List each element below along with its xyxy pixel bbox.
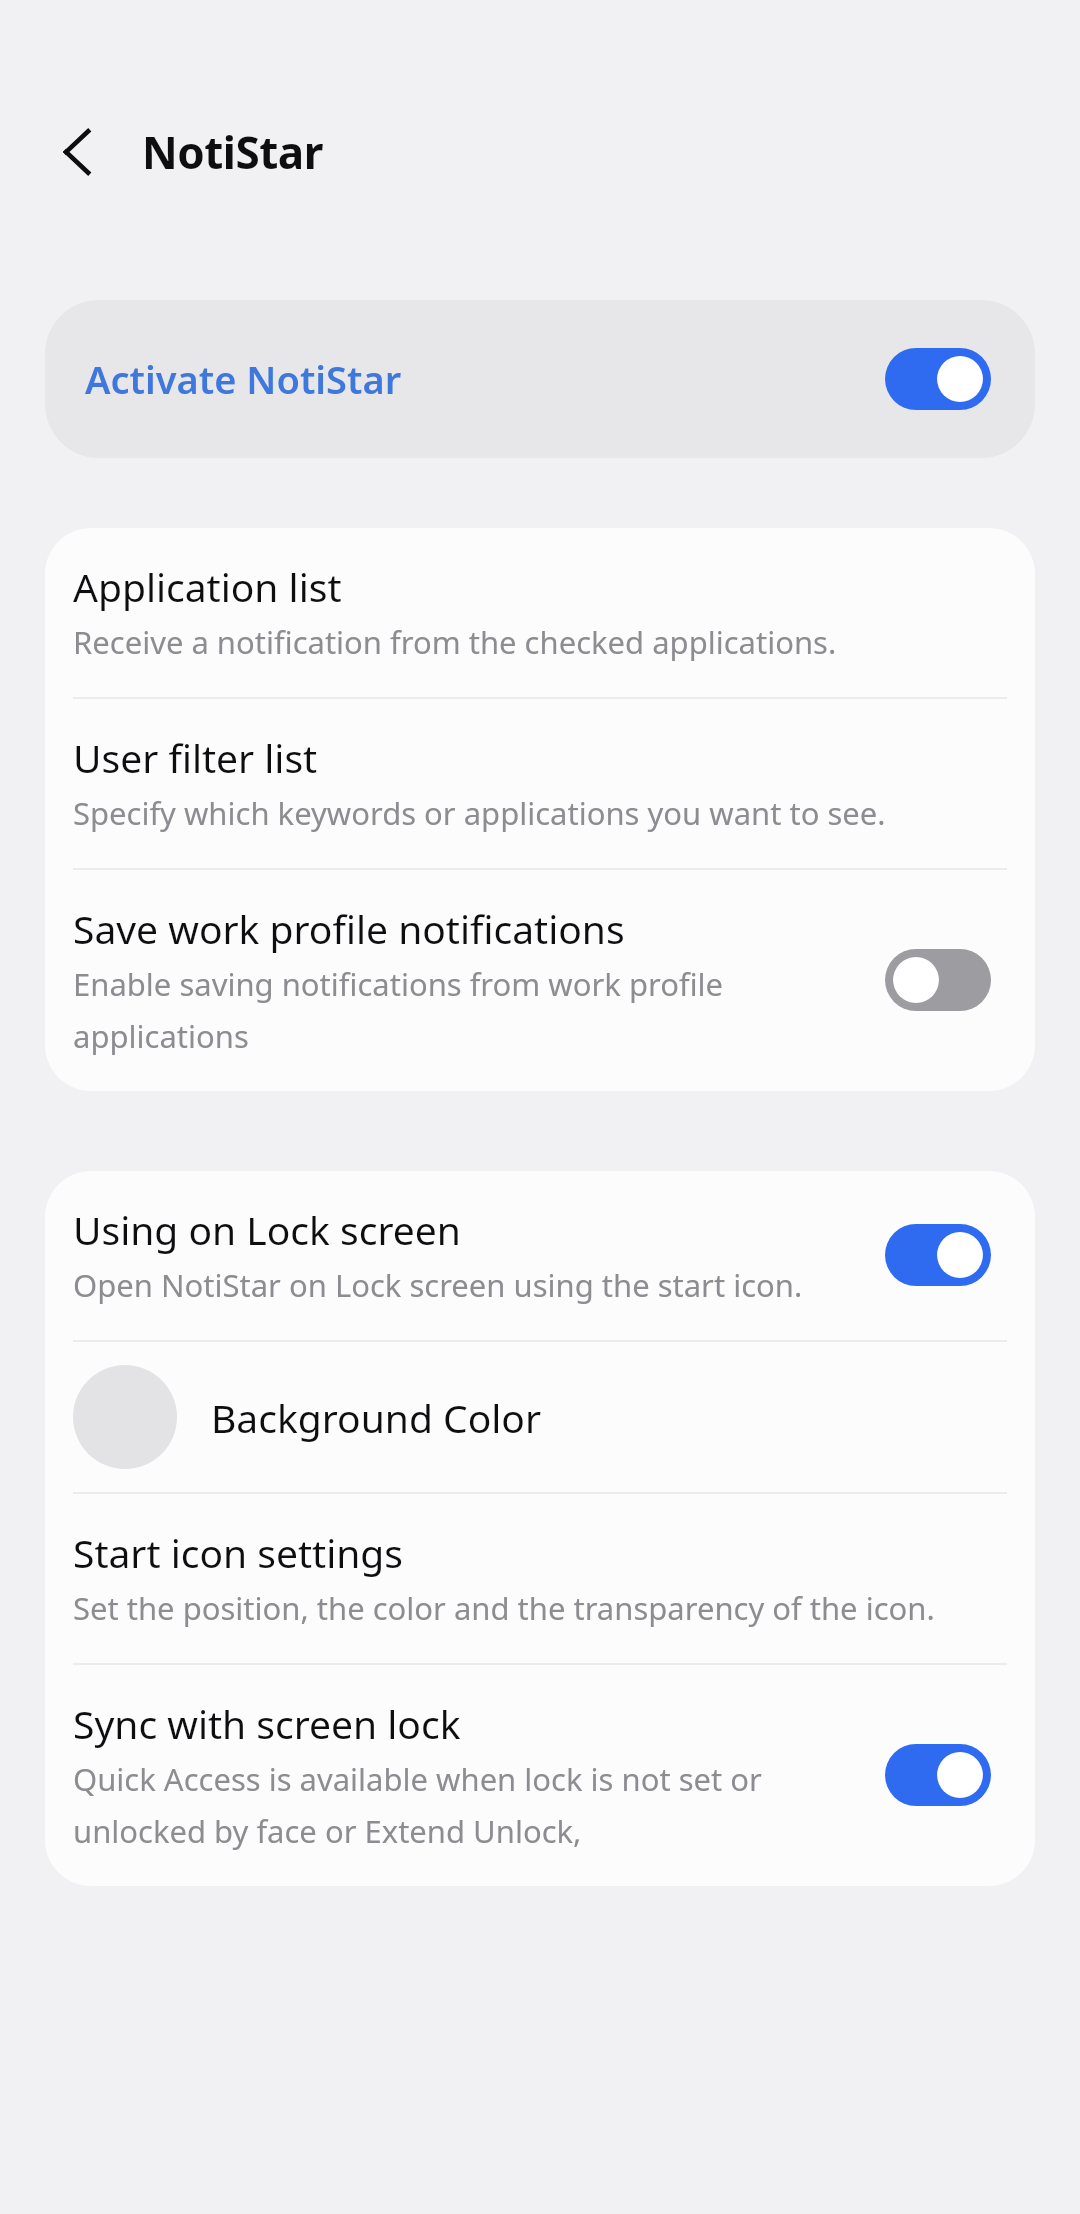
staticText: User filter list (73, 731, 318, 784)
staticText: NotiStar (142, 122, 323, 182)
button[interactable]: Switch on (885, 348, 991, 410)
staticText: Specify which keywords or applications y… (73, 792, 886, 834)
button[interactable]: Switch off (885, 949, 991, 1011)
button[interactable]: Activate NotiStar (45, 300, 1035, 458)
button[interactable]: User filter list (45, 699, 1035, 868)
staticText: Using on Lock screen (73, 1203, 461, 1256)
button[interactable]: Start icon settings (45, 1494, 1035, 1663)
button[interactable]: Using on Lock screen (45, 1171, 1035, 1340)
staticText: Activate NotiStar (85, 353, 885, 405)
staticText: Enable saving notifications from work pr… (73, 963, 869, 1057)
button[interactable]: Back (40, 114, 116, 190)
staticText: Start icon settings (73, 1526, 403, 1579)
button[interactable]: Save work profile notifications (45, 870, 1035, 1091)
button[interactable]: Background Color (45, 1342, 1035, 1492)
staticText: Open NotiStar on Lock screen using the s… (73, 1264, 803, 1306)
staticText: Save work profile notifications (73, 902, 625, 955)
button[interactable]: Switch on (885, 1224, 991, 1286)
staticText: Quick Access is available when lock is n… (73, 1758, 869, 1852)
staticText: Receive a notification from the checked … (73, 621, 837, 663)
staticText: Background Color (211, 1391, 542, 1444)
button[interactable]: Application list (45, 528, 1035, 697)
staticText: Application list (73, 560, 342, 613)
staticText: Set the position, the color and the tran… (73, 1587, 935, 1629)
button[interactable]: Sync with screen lock (45, 1665, 1035, 1886)
button[interactable]: Switch on (885, 1744, 991, 1806)
staticText: Sync with screen lock (73, 1697, 461, 1750)
